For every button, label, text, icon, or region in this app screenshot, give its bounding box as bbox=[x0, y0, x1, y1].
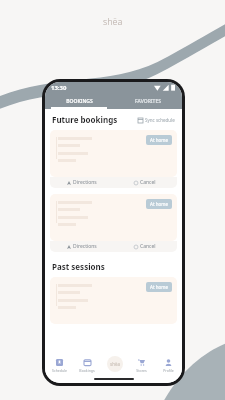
staticText: Schedule bbox=[52, 368, 67, 373]
button[interactable]: Stores bbox=[128, 359, 155, 383]
staticText: Directions bbox=[73, 179, 97, 186]
staticText: Directions bbox=[73, 243, 97, 250]
staticText: Cancel bbox=[140, 243, 156, 250]
staticText: Sync schedule bbox=[145, 117, 175, 123]
staticText: Stores bbox=[136, 368, 147, 373]
button[interactable]: At home bbox=[50, 130, 177, 177]
button[interactable]: Home bbox=[107, 356, 123, 372]
button[interactable]: Schedule bbox=[45, 359, 73, 383]
button[interactable]: Directions bbox=[50, 177, 113, 188]
button[interactable]: Sync schedule bbox=[138, 117, 175, 123]
staticText: Bookings bbox=[79, 368, 95, 373]
button[interactable]: Directions bbox=[50, 241, 113, 252]
staticText: FAVORITES bbox=[135, 98, 161, 105]
staticText: shëa bbox=[103, 15, 123, 27]
staticText: 13:30 bbox=[51, 84, 67, 92]
button[interactable]: Bookings bbox=[73, 359, 101, 383]
staticText: shëa bbox=[110, 361, 120, 367]
staticText: BOOKINGS bbox=[66, 98, 93, 105]
button[interactable]: Cancel bbox=[113, 241, 177, 252]
button[interactable]: At home bbox=[50, 277, 177, 324]
button[interactable]: At home bbox=[50, 194, 177, 241]
button[interactable]: Cancel bbox=[113, 177, 177, 188]
staticText: Future bookings bbox=[52, 114, 118, 125]
staticText: Profile bbox=[163, 368, 174, 373]
staticText: Past sessions bbox=[52, 261, 105, 272]
staticText: At home bbox=[150, 284, 168, 290]
button[interactable]: FAVORITES bbox=[113, 93, 182, 109]
staticText: At home bbox=[150, 137, 168, 143]
button[interactable]: Profile bbox=[155, 359, 182, 383]
staticText: Cancel bbox=[140, 179, 156, 186]
staticText: At home bbox=[150, 201, 168, 207]
button[interactable]: BOOKINGS bbox=[45, 93, 113, 109]
